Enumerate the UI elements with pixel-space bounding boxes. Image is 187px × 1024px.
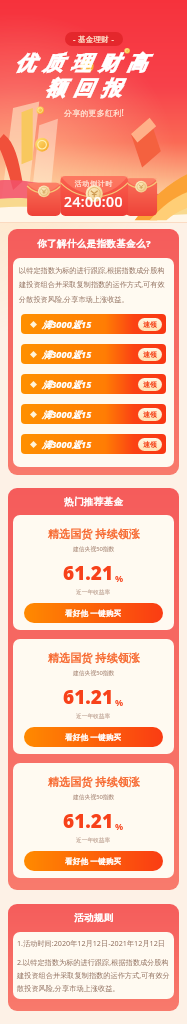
staticText: 24:00:00 [64, 192, 123, 211]
staticText: 速领 [143, 410, 157, 419]
button[interactable]: 精选国货 持续领涨 [13, 515, 174, 630]
button[interactable]: 速领 [138, 408, 162, 421]
staticText: 近一年收益率 [76, 837, 111, 844]
staticText: 精选国货 持续领涨 [48, 650, 140, 665]
staticText: 满3000返15 [42, 438, 92, 450]
button[interactable]: 速领 [138, 318, 162, 331]
staticText: 分享的更多红利! [64, 107, 124, 118]
button[interactable]: 满3000返15 [21, 434, 166, 454]
button[interactable]: 看好他 一键购买 [24, 727, 163, 747]
staticText: 看好他 一键购买 [65, 732, 122, 742]
staticText: 看好他 一键购买 [65, 608, 122, 618]
button[interactable]: 满3000返15 [21, 404, 166, 424]
button[interactable]: 满3000返15 [21, 374, 166, 394]
staticText: 额回报 [45, 76, 129, 101]
staticText: 看好他 一键购买 [65, 856, 122, 866]
staticText: 建信央视50指数 [73, 793, 115, 801]
staticText: 以特定指数为标的进行跟踪,根据指数成分股构建投资组合并采取复制指数的运作方式,可… [19, 265, 168, 304]
staticText: 满3000返15 [42, 348, 92, 360]
staticText: 活动倒计时 [74, 179, 113, 188]
staticText: 1.活动时间:2020年12月12日-2021年12月12日 [17, 938, 165, 948]
staticText: 你了解什么是指数基金么? [37, 237, 151, 250]
staticText: 建信央视50指数 [73, 545, 115, 553]
staticText: 61.21 [63, 560, 114, 586]
staticText: 61.21 [63, 684, 114, 710]
button[interactable]: 看好他 一键购买 [24, 603, 163, 623]
staticText: 满3000返15 [42, 378, 92, 390]
staticText: 活动规则 [74, 912, 114, 924]
button[interactable]: 速领 [138, 438, 162, 451]
staticText: % [115, 572, 124, 584]
staticText: 速领 [143, 320, 157, 329]
button[interactable]: 速领 [138, 348, 162, 361]
button[interactable]: 满3000返15 [21, 314, 166, 334]
staticText: 速领 [143, 350, 157, 359]
staticText: 精选国货 持续领涨 [48, 774, 140, 789]
staticText: 速领 [143, 380, 157, 389]
staticText: 近一年收益率 [76, 589, 111, 596]
button[interactable]: 满3000返15 [21, 344, 166, 364]
staticText: 61.21 [63, 808, 114, 834]
staticText: - 基金理财 - [73, 34, 115, 44]
button[interactable]: 速领 [138, 378, 162, 391]
button[interactable]: 精选国货 持续领涨 [13, 639, 174, 754]
staticText: 速领 [143, 440, 157, 449]
button[interactable]: 看好他 一键购买 [24, 851, 163, 871]
button[interactable]: 精选国货 持续领涨 [13, 763, 174, 878]
staticText: % [115, 820, 124, 832]
staticText: 满3000返15 [42, 318, 92, 330]
staticText: 2.以特定指数为标的进行跟踪,根据指数成分股构建投资组合并采取复制指数的运作方式… [17, 957, 170, 993]
staticText: 优质理财高 [15, 51, 155, 76]
staticText: 近一年收益率 [76, 713, 111, 720]
staticText: 精选国货 持续领涨 [48, 526, 140, 541]
staticText: 建信央视50指数 [73, 669, 115, 677]
staticText: % [115, 696, 124, 708]
staticText: 满3000返15 [42, 408, 92, 420]
staticText: 热门推荐基金 [64, 496, 124, 508]
